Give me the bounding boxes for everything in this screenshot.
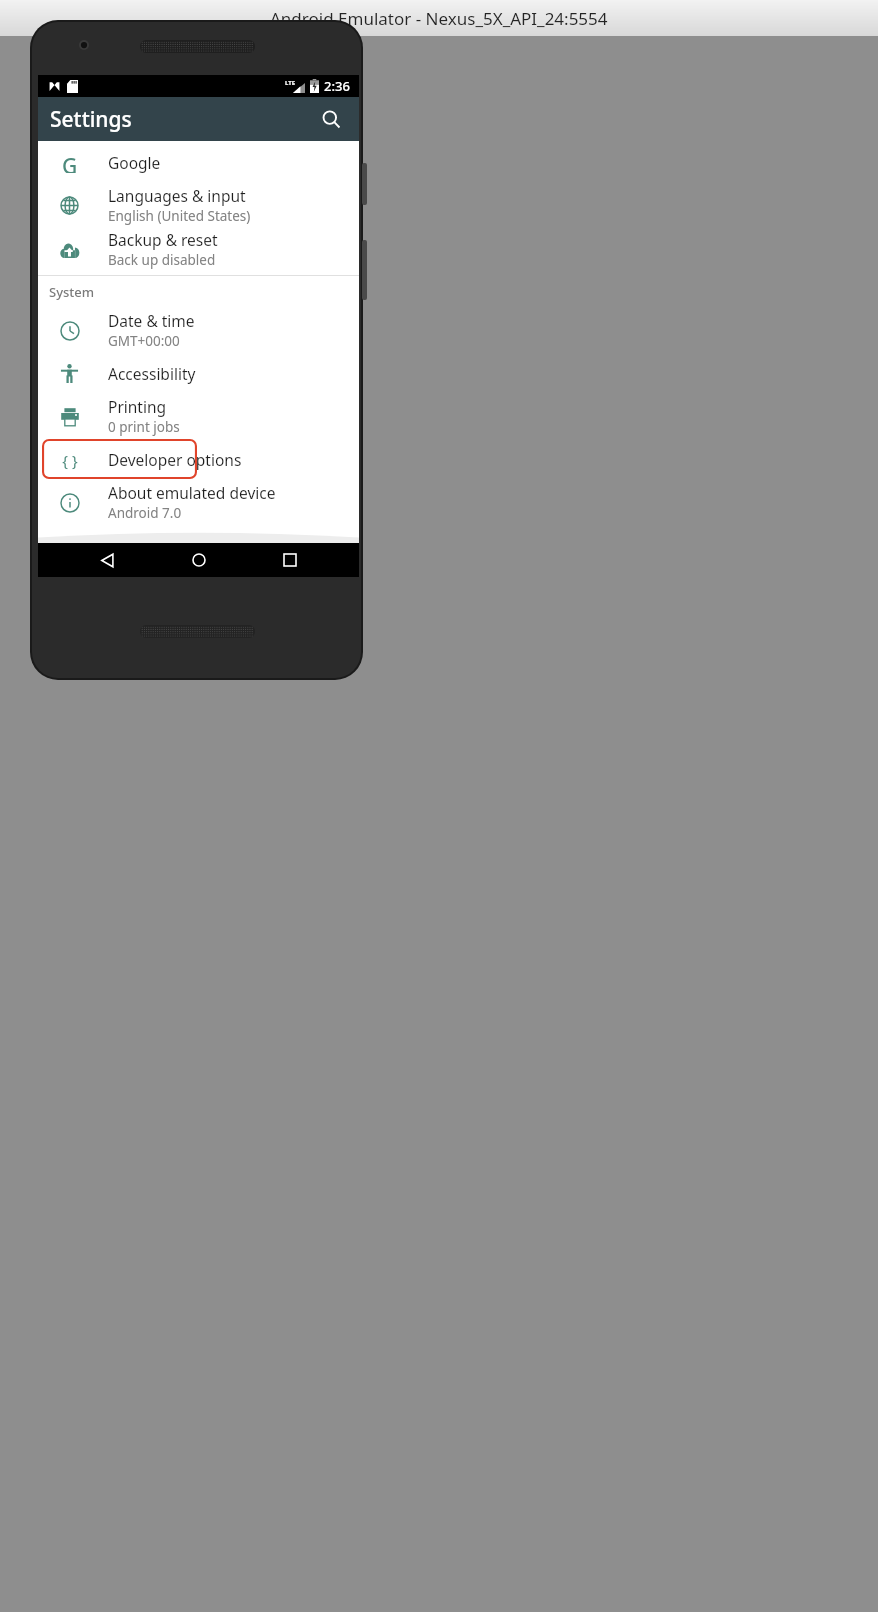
- button[interactable]: { }: [38, 438, 359, 480]
- staticText: Developer options: [108, 449, 242, 470]
- staticText: Backup & reset: [108, 229, 218, 250]
- button[interactable]: Search: [311, 99, 351, 139]
- button[interactable]: Recent apps: [268, 543, 312, 577]
- staticText: LTE: [285, 79, 296, 87]
- staticText: 0 print jobs: [108, 418, 180, 436]
- staticText: System: [49, 283, 95, 301]
- button[interactable]: About emulated device: [38, 480, 359, 524]
- staticText: { }: [62, 450, 78, 470]
- button[interactable]: Accessibility: [38, 352, 359, 394]
- staticText: 2:36: [324, 77, 350, 95]
- staticText: G: [62, 152, 78, 173]
- staticText: Printing: [108, 396, 167, 417]
- staticText: About emulated device: [108, 482, 276, 503]
- staticText: Android 7.0: [108, 504, 182, 522]
- button[interactable]: Date & time: [38, 308, 359, 352]
- staticText: Languages & input: [108, 185, 246, 206]
- staticText: GMT+00:00: [108, 332, 180, 350]
- button[interactable]: Backup & reset: [38, 227, 359, 271]
- staticText: Back up disabled: [108, 251, 216, 269]
- staticText: Android Emulator - Nexus_5X_API_24:5554: [270, 7, 608, 30]
- button[interactable]: Languages & input: [38, 183, 359, 227]
- button[interactable]: G: [38, 141, 359, 183]
- staticText: Google: [108, 152, 161, 173]
- staticText: English (United States): [108, 207, 251, 225]
- staticText: Accessibility: [108, 363, 196, 384]
- staticText: Settings: [50, 105, 132, 134]
- button[interactable]: Back: [85, 543, 129, 577]
- staticText: Date & time: [108, 310, 195, 331]
- button[interactable]: Home: [177, 543, 221, 577]
- button[interactable]: Printing: [38, 394, 359, 438]
